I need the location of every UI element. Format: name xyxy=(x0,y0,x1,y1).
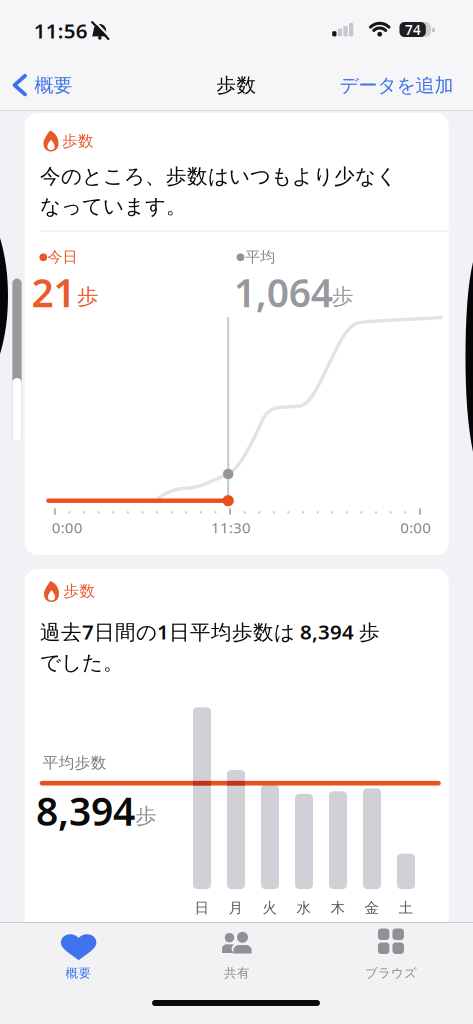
staticText: 土 xyxy=(398,899,413,917)
staticText: 0:00 xyxy=(400,517,431,538)
staticText: 金 xyxy=(364,899,379,917)
button[interactable]: 戻る xyxy=(12,73,72,97)
staticText: ブラウズ xyxy=(365,965,417,981)
button[interactable]: データを追加 xyxy=(339,73,453,97)
staticText: 11:56 xyxy=(34,17,88,44)
staticText: 歩数 xyxy=(62,131,94,151)
staticText: 水 xyxy=(296,899,311,917)
staticText: 概要 xyxy=(66,965,92,981)
staticText: 歩 xyxy=(135,803,156,829)
staticText: 8,394 xyxy=(36,784,135,837)
staticText: 木 xyxy=(330,899,345,917)
staticText: 21 xyxy=(31,265,75,318)
button[interactable]: 共有 xyxy=(197,925,277,981)
staticText: 日 xyxy=(194,899,209,917)
staticText: 月 xyxy=(228,899,243,917)
staticText: 今のところ、歩数はいつもより少なく なっています。 xyxy=(40,163,397,219)
staticText: 歩 xyxy=(332,283,354,310)
staticText: 平均 xyxy=(245,248,275,266)
staticText: 火 xyxy=(262,899,277,917)
staticText: 0:00 xyxy=(52,517,83,538)
button[interactable]: 概要 xyxy=(39,925,119,981)
staticText: 1,064 xyxy=(234,265,333,318)
button[interactable]: ブラウズ xyxy=(351,925,431,981)
staticText: 共有 xyxy=(224,965,250,981)
staticText: 概要 xyxy=(34,73,72,97)
staticText: 11:30 xyxy=(211,517,251,538)
staticText: 歩 xyxy=(77,283,99,310)
staticText: 過去7日間の1日平均歩数は 8,394 歩 でした。 xyxy=(40,617,380,675)
staticText: データを追加 xyxy=(339,73,453,97)
staticText: 平均歩数 xyxy=(43,753,107,772)
staticText: 今日 xyxy=(47,248,77,266)
staticText: 歩数 xyxy=(63,581,95,601)
staticText: 歩数 xyxy=(216,73,256,98)
staticText: 74 xyxy=(405,20,421,39)
